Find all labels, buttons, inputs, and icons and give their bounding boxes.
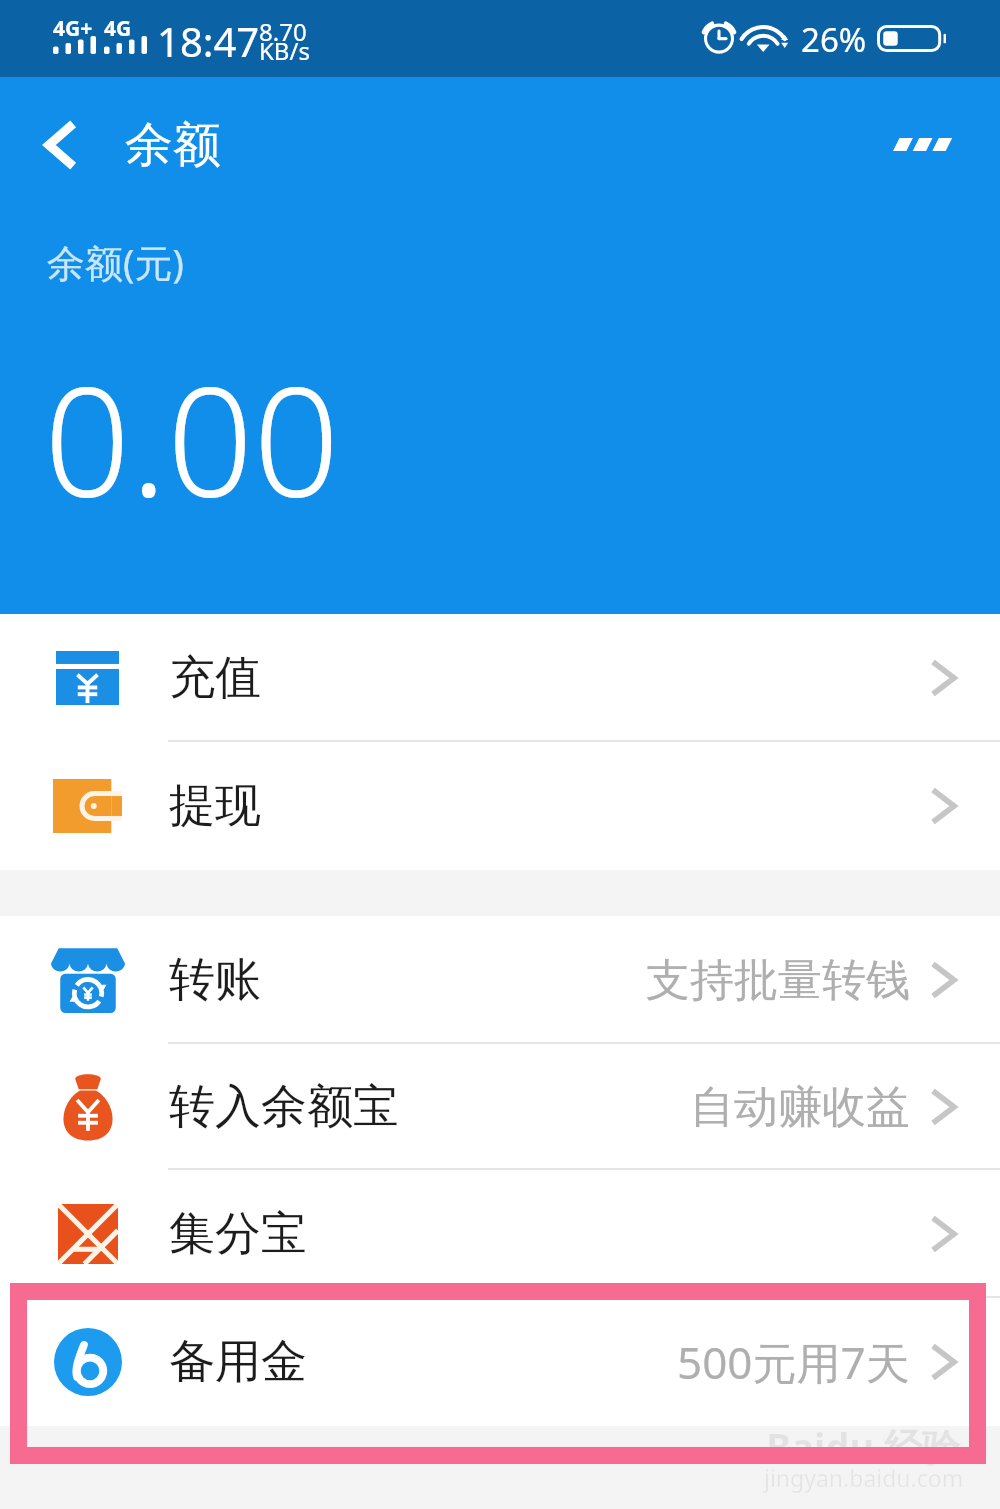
button[interactable]: More options [845, 77, 1000, 212]
staticText: 500元用7天 [677, 1332, 910, 1392]
staticText: jingyan.baidu.com [764, 1462, 964, 1493]
button[interactable]: 集分宝 [0, 1170, 1000, 1298]
button[interactable]: 提现 [0, 742, 1000, 870]
staticText: 18:47 [157, 14, 260, 68]
staticText: 备用金 [169, 1333, 307, 1391]
staticText: 提现 [169, 777, 261, 835]
staticText: 支持批量转钱 [646, 953, 910, 1008]
staticText: 充值 [169, 649, 261, 707]
staticText: 集分宝 [169, 1205, 307, 1263]
button[interactable]: Back [0, 77, 122, 212]
button[interactable]: 备用金 [0, 1298, 1000, 1426]
staticText: 0.00 [44, 335, 340, 541]
staticText: 余额 [125, 115, 221, 175]
button[interactable]: 转入余额宝 [0, 1044, 1000, 1170]
staticText: 自动赚收益 [690, 1080, 910, 1135]
button[interactable]: 充值 [0, 614, 1000, 742]
staticText: 余额(元) [47, 236, 184, 288]
staticText: 转入余额宝 [169, 1078, 399, 1136]
staticText: 转账 [169, 951, 261, 1009]
staticText: KB/s [259, 34, 310, 67]
button[interactable]: 转账 [0, 916, 1000, 1044]
staticText: 8.70 [259, 15, 307, 48]
staticText: 26% [801, 17, 867, 62]
staticText: 4G [104, 14, 132, 43]
staticText: Baidu 经验 [766, 1420, 960, 1472]
staticText: 4G+ [53, 14, 93, 43]
